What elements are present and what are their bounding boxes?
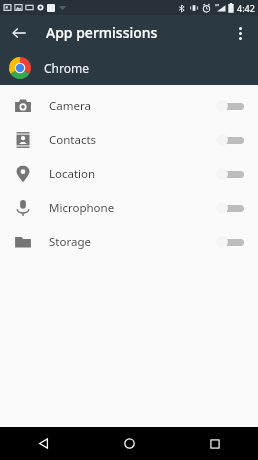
button[interactable]: Back [0, 427, 86, 460]
button[interactable]: Toggle permission [216, 132, 244, 148]
button[interactable]: Camera [0, 89, 258, 123]
staticText: Contacts [49, 132, 97, 148]
button[interactable]: Recent apps [172, 427, 258, 460]
staticText: Microphone [49, 200, 115, 216]
button[interactable]: Microphone [0, 191, 258, 225]
button[interactable]: Home [86, 427, 172, 460]
button[interactable]: Toggle permission [216, 98, 244, 114]
button[interactable]: Storage [0, 225, 258, 259]
staticText: App permissions [46, 23, 158, 42]
button[interactable]: Back [6, 20, 32, 46]
button[interactable]: Chrome [0, 50, 258, 85]
staticText: Chrome [44, 60, 89, 76]
staticText: Storage [49, 234, 91, 250]
button[interactable]: Toggle permission [216, 234, 244, 250]
staticText: 4:42 [237, 2, 255, 14]
button[interactable]: Toggle permission [216, 200, 244, 216]
button[interactable]: Location [0, 157, 258, 191]
button[interactable]: More options [227, 20, 253, 46]
button[interactable]: Contacts [0, 123, 258, 157]
button[interactable]: Toggle permission [216, 166, 244, 182]
staticText: Camera [49, 98, 91, 114]
staticText: Location [49, 166, 96, 182]
